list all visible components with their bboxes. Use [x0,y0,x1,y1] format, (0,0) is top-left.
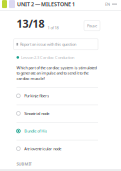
staticText: Report an issue with this question [20,42,76,47]
button[interactable]: Atrioventricular node [16,140,98,157]
staticText: Bundle of His [24,128,47,134]
button[interactable]: Sinoatrial node [16,105,98,122]
staticText: 13/18 [16,17,44,31]
staticText: EN [105,1,110,7]
button[interactable]: Purkinje fibers [16,87,98,105]
button[interactable]: Bundle of His [16,122,98,140]
staticText: Sinoatrial node [24,111,49,116]
staticText: Atrioventricular node [24,146,61,151]
staticText: Purkinje fibers [24,93,49,98]
staticText: SUBMIT [16,161,31,167]
button[interactable]: Report an issue with this question [14,39,98,50]
staticText: Which part of the cardiac system is stim… [16,65,96,81]
button[interactable]: Pause [84,20,100,31]
staticText: UNIT 2 — MILESTONE 1 [17,1,75,8]
staticText: Pause [87,23,97,28]
staticText: Lesson 2.3 Cardiac Conduction [21,55,74,60]
button[interactable]: SUBMIT [0,157,121,170]
staticText: 1 of 18 [47,25,58,30]
